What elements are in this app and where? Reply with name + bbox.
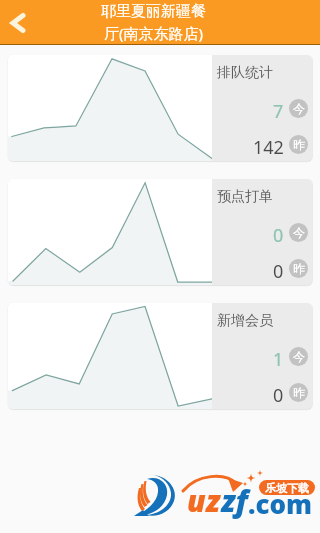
button[interactable]: Back [0, 0, 40, 45]
staticText: .com [248, 486, 313, 521]
staticText: 新增会员 [217, 312, 273, 330]
staticText: 今 [293, 225, 305, 240]
staticText: 1 [273, 347, 284, 366]
staticText: 预点打单 [217, 188, 273, 206]
button[interactable]: 排队统计 [8, 55, 312, 161]
staticText: zf [221, 480, 248, 521]
button[interactable]: 预点打单 [8, 179, 312, 285]
staticText: 7 [273, 99, 284, 118]
staticText: 0 [273, 223, 284, 242]
staticText: uz [187, 480, 221, 521]
staticText: 昨 [293, 385, 305, 400]
staticText: 乐坡下载 [265, 481, 309, 495]
staticText: 今 [293, 101, 305, 116]
staticText: 0 [273, 383, 284, 402]
staticText: 耶里夏丽新疆餐厅(南京东路店) [100, 2, 207, 44]
staticText: 0 [273, 259, 284, 278]
button[interactable]: 新增会员 [8, 303, 312, 409]
staticText: 昨 [293, 137, 305, 152]
staticText: 排队统计 [217, 64, 273, 82]
staticText: 今 [293, 349, 305, 364]
staticText: 昨 [293, 261, 305, 276]
staticText: 142 [253, 135, 284, 154]
